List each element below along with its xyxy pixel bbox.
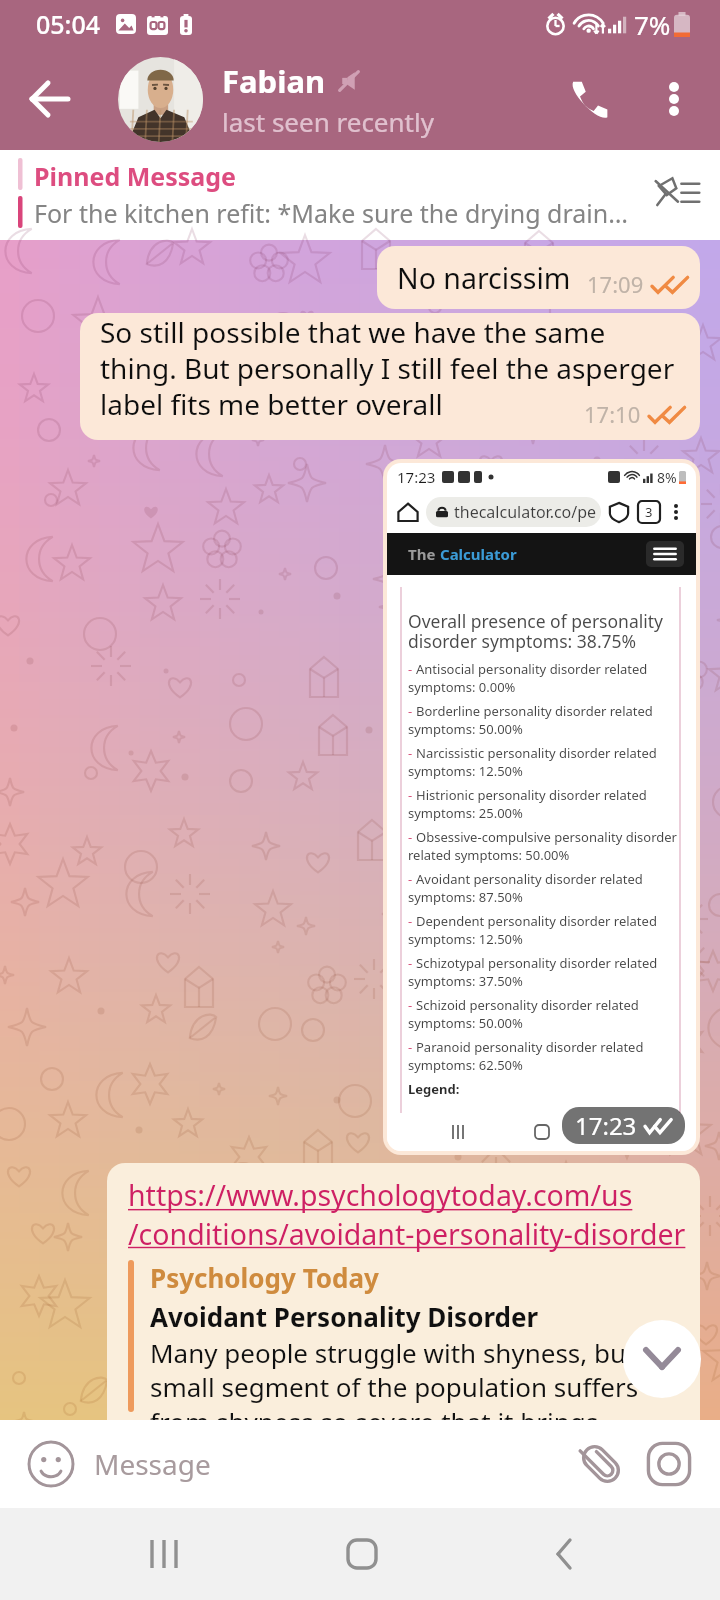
- button[interactable]: Home: [328, 1520, 396, 1588]
- staticText: Obsessive-compulsive personality disorde…: [416, 828, 677, 846]
- staticText: symptoms: 50.00%: [408, 720, 523, 738]
- staticText: symptoms: 0.00%: [408, 678, 516, 696]
- button[interactable]: Profile photo: [118, 57, 203, 142]
- staticText: Dependent personality disorder related: [416, 912, 657, 930]
- staticText: Histrionic personality disorder related: [416, 786, 647, 804]
- staticText: -: [408, 954, 413, 972]
- staticText: symptoms: 37.50%: [408, 972, 523, 990]
- staticText: Antisocial personality disorder related: [416, 660, 648, 678]
- button[interactable]: Scroll to bottom: [623, 1320, 701, 1398]
- staticText: So still possible that we have the same …: [100, 313, 680, 423]
- button[interactable]: Recent apps: [130, 1520, 198, 1588]
- staticText: Legend:: [408, 1080, 460, 1098]
- button[interactable]: Attach: [572, 1435, 630, 1493]
- staticText: 17:09: [587, 269, 644, 299]
- staticText: 05:04: [36, 7, 101, 41]
- staticText: Message: [94, 1445, 211, 1483]
- button[interactable]: Photo: [383, 459, 700, 1155]
- staticText: thecalculator.co/pe: [454, 501, 597, 523]
- staticText: symptoms: 25.00%: [408, 804, 523, 822]
- staticText: https://www.psychologytoday.com/us /cond…: [128, 1176, 686, 1253]
- staticText: Schizoid personality disorder related: [416, 996, 639, 1014]
- button[interactable]: No narcissim: [377, 246, 700, 309]
- button[interactable]: https://www.psychologytoday.com/us /cond…: [107, 1163, 700, 1420]
- button[interactable]: Back: [14, 63, 86, 135]
- staticText: 7%: [634, 7, 671, 42]
- button[interactable]: More options: [643, 68, 705, 130]
- staticText: For the kitchen refit: *Make sure the dr…: [34, 196, 629, 230]
- staticText: last seen recently: [222, 104, 434, 139]
- staticText: Paranoid personality disorder related: [416, 1038, 644, 1056]
- staticText: No narcissim: [397, 259, 571, 298]
- staticText: symptoms: 50.00%: [408, 1014, 523, 1032]
- staticText: related symptoms: 50.00%: [408, 846, 570, 864]
- staticText: symptoms: 62.50%: [408, 1056, 523, 1074]
- staticText: 8%: [657, 468, 677, 487]
- staticText: 17:10: [584, 399, 641, 429]
- staticText: Psychology Today: [150, 1260, 379, 1295]
- staticText: -: [408, 660, 413, 678]
- staticText: Borderline personality disorder related: [416, 702, 653, 720]
- button[interactable]: Emoji: [27, 1440, 75, 1488]
- staticText: Overall presence of personality disorder…: [408, 609, 682, 654]
- staticText: Fabian: [222, 60, 326, 102]
- staticText: Calculator: [440, 544, 517, 564]
- staticText: -: [408, 786, 413, 804]
- button[interactable]: Call: [553, 63, 625, 135]
- staticText: symptoms: 12.50%: [408, 930, 523, 948]
- staticText: symptoms: 12.50%: [408, 762, 523, 780]
- button[interactable]: Back: [530, 1520, 598, 1588]
- staticText: 17:23: [575, 1109, 637, 1142]
- staticText: 17:23: [397, 467, 436, 487]
- staticText: Pinned Message: [34, 159, 237, 193]
- staticText: -: [408, 996, 413, 1014]
- button[interactable]: So still possible that we have the same …: [80, 313, 700, 440]
- staticText: -: [408, 870, 413, 888]
- staticText: Many people struggle with shyness, but a…: [150, 1335, 686, 1420]
- button[interactable]: Camera: [640, 1435, 698, 1493]
- staticText: symptoms: 87.50%: [408, 888, 523, 906]
- button[interactable]: Pinned messages list: [650, 167, 706, 223]
- staticText: Narcissistic personality disorder relate…: [416, 744, 657, 762]
- staticText: -: [408, 1038, 413, 1056]
- staticText: -: [408, 912, 413, 930]
- staticText: Avoidant personality disorder related: [416, 870, 643, 888]
- button[interactable]: Pinned Message: [0, 150, 720, 240]
- staticText: Schizotypal personality disorder related: [416, 954, 658, 972]
- staticText: -: [408, 828, 413, 846]
- staticText: 3: [645, 503, 653, 521]
- staticText: -: [408, 744, 413, 762]
- staticText: The: [408, 544, 440, 564]
- staticText: Avoidant Personality Disorder: [150, 1299, 539, 1334]
- button[interactable]: Menu: [646, 541, 684, 567]
- staticText: -: [408, 702, 413, 720]
